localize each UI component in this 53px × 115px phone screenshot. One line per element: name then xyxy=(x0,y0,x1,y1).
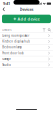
button[interactable]: Studio xyxy=(0,62,53,68)
button[interactable]: Living room speaker xyxy=(0,33,53,39)
button[interactable]: Sort xyxy=(42,27,47,32)
button[interactable]: Front door lock xyxy=(0,50,53,56)
staticText: Add device xyxy=(17,16,39,21)
button[interactable]: Garage xyxy=(0,56,53,62)
staticText: Studio xyxy=(2,63,11,67)
staticText: 9:41 xyxy=(3,1,10,6)
button[interactable]: Kitchen display hub xyxy=(0,39,53,44)
staticText: Living room speaker xyxy=(2,34,29,37)
button[interactable]: Back xyxy=(0,5,7,13)
staticText: Front door lock xyxy=(2,51,23,55)
button[interactable]: Add device xyxy=(2,15,51,23)
staticText: Kitchen display hub xyxy=(2,40,30,43)
staticText: Devices xyxy=(2,28,11,32)
staticText: Devices xyxy=(19,7,33,12)
button[interactable]: Bedroom lamp xyxy=(0,44,53,50)
staticText: Bedroom lamp xyxy=(2,45,22,49)
button[interactable]: Search xyxy=(47,27,53,32)
staticText: Garage xyxy=(2,57,11,61)
